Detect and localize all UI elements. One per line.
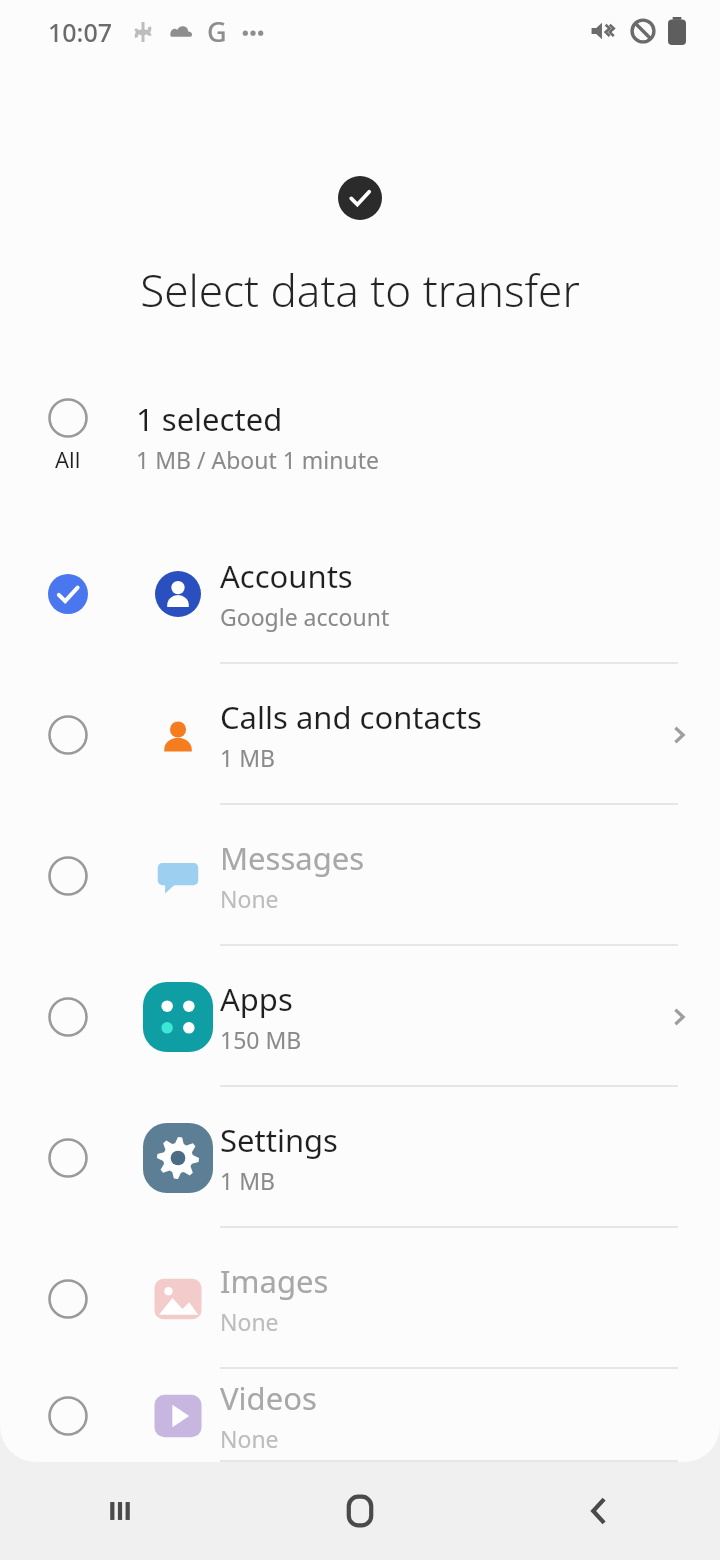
- staticText: 10:07: [48, 15, 113, 49]
- button[interactable]: Accounts: [0, 523, 720, 664]
- staticText: Google account: [220, 601, 390, 632]
- staticText: 1 MB / About 1 minute: [136, 444, 379, 475]
- staticText: 150 MB: [220, 1024, 302, 1055]
- button[interactable]: Calls and contacts: [0, 664, 720, 805]
- button[interactable]: Messages: [0, 805, 720, 946]
- staticText: Messages: [220, 837, 365, 879]
- staticText: Select data to transfer: [0, 260, 720, 320]
- staticText: All: [55, 444, 81, 474]
- staticText: None: [220, 1306, 279, 1337]
- button[interactable]: Home: [240, 1462, 480, 1560]
- staticText: Apps: [220, 978, 293, 1020]
- staticText: None: [220, 883, 279, 914]
- button[interactable]: Images: [0, 1228, 720, 1369]
- staticText: 1 MB: [220, 742, 275, 773]
- button[interactable]: Settings: [0, 1087, 720, 1228]
- staticText: 1 MB: [220, 1165, 275, 1196]
- button[interactable]: Recent apps: [0, 1462, 240, 1560]
- button[interactable]: Apps: [0, 946, 720, 1087]
- staticText: None: [220, 1423, 279, 1454]
- staticText: Accounts: [220, 555, 353, 597]
- staticText: Calls and contacts: [220, 696, 482, 738]
- button[interactable]: Videos: [0, 1369, 720, 1462]
- staticText: G: [207, 13, 227, 50]
- button[interactable]: All: [0, 382, 720, 523]
- staticText: 1 selected: [136, 398, 283, 440]
- button[interactable]: Back: [480, 1462, 720, 1560]
- staticText: Images: [220, 1260, 329, 1302]
- staticText: Settings: [220, 1119, 338, 1161]
- staticText: Videos: [220, 1377, 317, 1419]
